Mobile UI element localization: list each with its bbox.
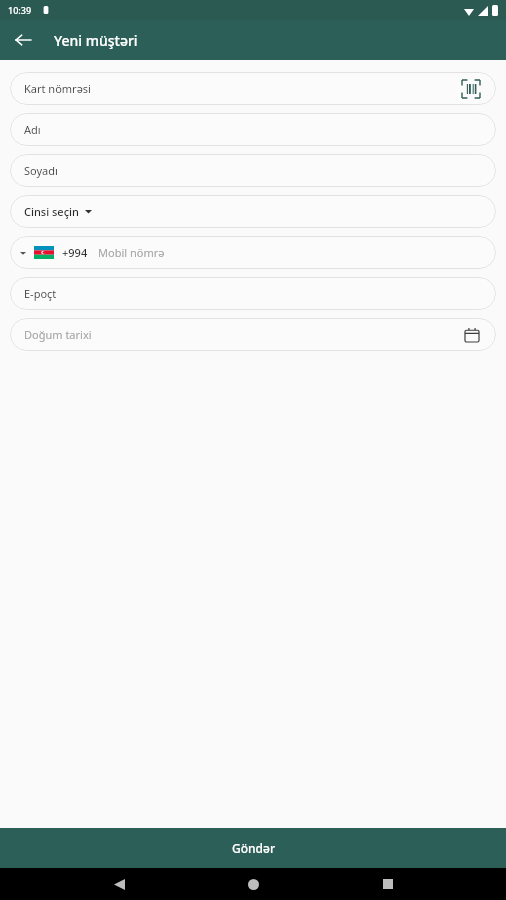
button[interactable]: Göndər (0, 828, 506, 868)
button[interactable]: Cinsi seçin (10, 195, 496, 228)
button[interactable]: Soyadı (10, 154, 496, 187)
staticText: Cinsi seçin (24, 204, 79, 219)
button[interactable]: Home (237, 868, 269, 900)
staticText: Doğum tarixi (24, 327, 462, 342)
staticText: Yeni müştəri (54, 31, 138, 50)
staticText: Adı (24, 122, 482, 137)
button[interactable]: Back (10, 27, 36, 53)
button[interactable]: E-poçt (10, 277, 496, 310)
staticText: Kart nömrəsi (24, 81, 460, 96)
staticText: +994 (62, 245, 88, 260)
button[interactable]: +994 (10, 236, 496, 269)
staticText: Göndər (232, 840, 275, 856)
staticText: 10:39 (8, 4, 32, 16)
button[interactable]: Doğum tarixi (10, 318, 496, 351)
button[interactable]: Scan barcode (460, 78, 482, 100)
button[interactable]: Back (103, 868, 135, 900)
button[interactable]: Adı (10, 113, 496, 146)
staticText: Soyadı (24, 163, 482, 178)
button[interactable]: Pick date (462, 325, 482, 345)
button[interactable]: Recents (372, 868, 404, 900)
staticText: E-poçt (24, 286, 482, 301)
button[interactable]: Kart nömrəsi (10, 72, 496, 105)
staticText: Mobil nömrə (98, 245, 165, 260)
